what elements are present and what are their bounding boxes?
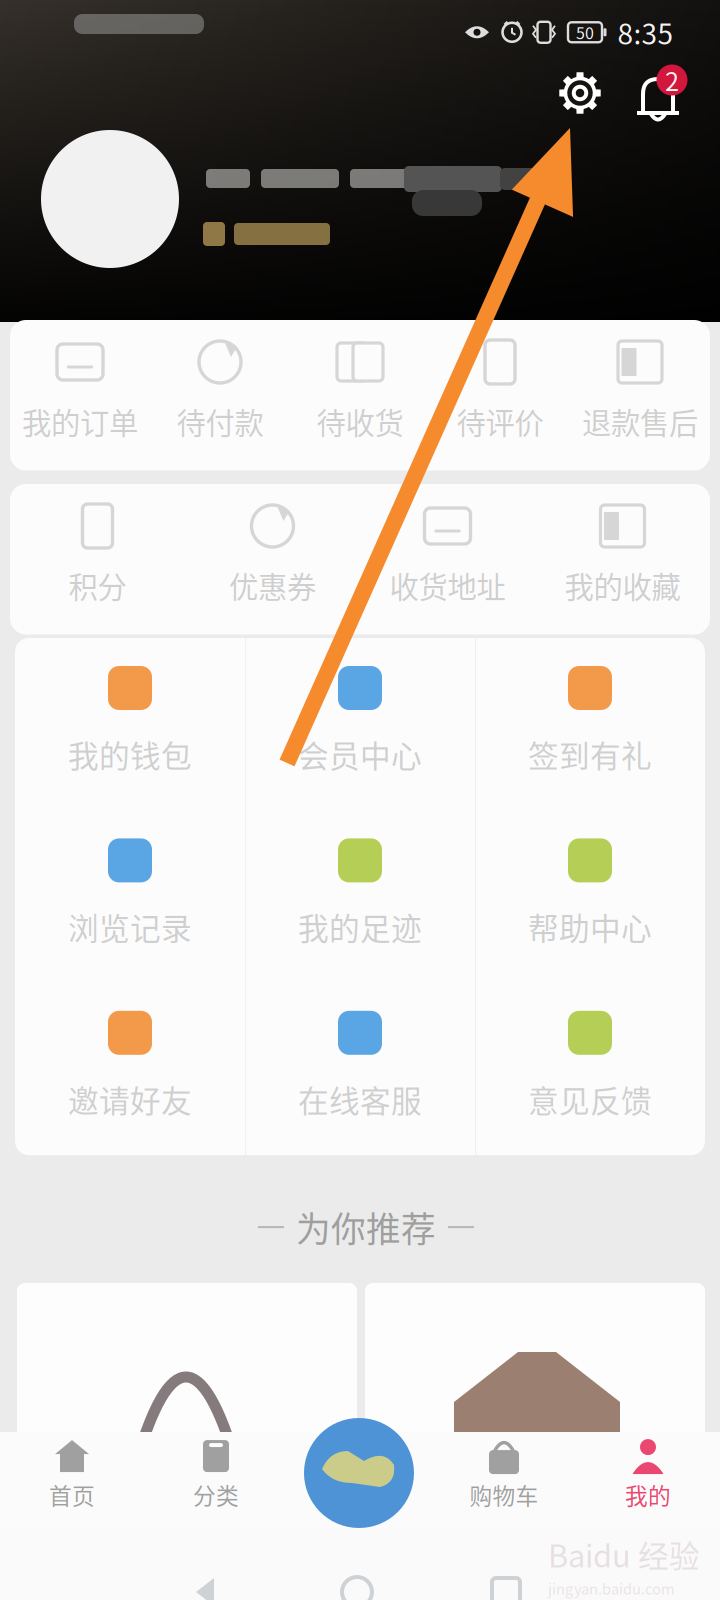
- staticText: 收货地址: [389, 564, 505, 606]
- button[interactable]: 意见反馈: [475, 983, 705, 1155]
- staticText: 签到有礼: [528, 732, 652, 776]
- staticText: 2: [665, 62, 679, 98]
- button[interactable]: 待收货: [290, 320, 430, 470]
- staticText: 为你推荐: [296, 1202, 436, 1252]
- button[interactable]: 会员中心: [245, 638, 475, 810]
- button[interactable]: 在线客服: [245, 983, 475, 1155]
- button[interactable]: 退款售后: [570, 320, 710, 470]
- staticText: jingyan.baidu.com: [548, 1577, 675, 1599]
- staticText: 邀请好友: [68, 1077, 192, 1121]
- button[interactable]: Recommended product 2: [365, 1283, 705, 1463]
- staticText: 50: [576, 21, 594, 44]
- button[interactable]: Settings: [553, 66, 607, 120]
- button[interactable]: 购物车: [432, 1437, 576, 1511]
- button[interactable]: 分类: [144, 1437, 288, 1511]
- staticText: 我的订单: [22, 400, 138, 442]
- button[interactable]: Notifications: [629, 66, 687, 130]
- button[interactable]: 优惠券: [185, 484, 360, 634]
- button[interactable]: 我的足迹: [245, 810, 475, 983]
- button[interactable]: 首页: [0, 1437, 144, 1511]
- staticText: 我的收藏: [564, 564, 680, 606]
- button[interactable]: 邀请好友: [15, 983, 245, 1155]
- staticText: 我的钱包: [68, 732, 192, 776]
- button[interactable]: 积分: [10, 484, 185, 634]
- button[interactable]: 收货地址: [360, 484, 535, 634]
- staticText: 我的足迹: [298, 904, 422, 949]
- staticText: 帮助中心: [528, 904, 652, 949]
- staticText: 8:35: [617, 12, 673, 52]
- staticText: 积分: [68, 564, 126, 606]
- button[interactable]: 待付款: [150, 320, 290, 470]
- staticText: 退款售后: [582, 400, 698, 442]
- staticText: 待评价: [456, 400, 543, 442]
- staticText: 意见反馈: [528, 1077, 652, 1121]
- staticText: 分类: [193, 1478, 239, 1511]
- staticText: 优惠券: [229, 564, 316, 606]
- staticText: Baidu 经验: [548, 1532, 700, 1576]
- staticText: 待收货: [316, 400, 403, 442]
- button[interactable]: 我的收藏: [535, 484, 710, 634]
- button[interactable]: Recommended product 1: [17, 1283, 357, 1463]
- staticText: 在线客服: [298, 1077, 422, 1121]
- button[interactable]: 浏览记录: [15, 810, 245, 983]
- button[interactable]: 我的钱包: [15, 638, 245, 810]
- button[interactable]: 我的: [576, 1437, 720, 1511]
- staticText: 首页: [49, 1478, 95, 1511]
- staticText: 待付款: [176, 400, 263, 442]
- button[interactable]: 帮助中心: [475, 810, 705, 983]
- staticText: 购物车: [469, 1478, 538, 1511]
- staticText: 浏览记录: [68, 904, 192, 949]
- staticText: 会员中心: [298, 732, 422, 776]
- button[interactable]: 我的订单: [10, 320, 150, 470]
- staticText: 我的: [625, 1478, 671, 1511]
- button[interactable]: 签到有礼: [475, 638, 705, 810]
- button[interactable]: Scan: [304, 1418, 414, 1528]
- button[interactable]: 待评价: [430, 320, 570, 470]
